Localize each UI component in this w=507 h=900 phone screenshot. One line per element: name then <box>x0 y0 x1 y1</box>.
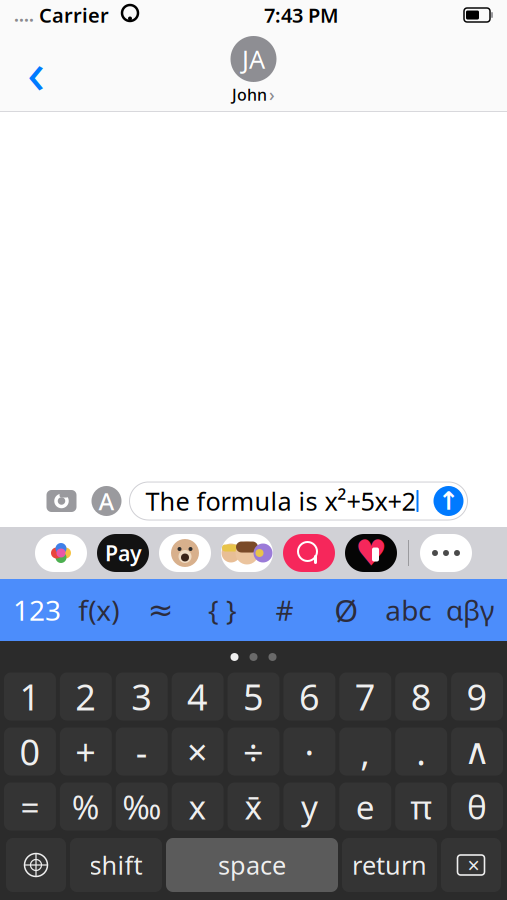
button[interactable]: space <box>166 838 338 892</box>
button[interactable]: Photos <box>30 531 92 575</box>
button[interactable]: Camera <box>39 482 83 520</box>
staticText: 8 <box>411 673 432 720</box>
staticText: JA <box>242 42 265 76</box>
staticText: › <box>269 83 275 106</box>
button[interactable]: Ø <box>315 579 377 641</box>
staticText: y <box>301 784 318 829</box>
button[interactable]: - <box>116 727 168 775</box>
staticText: % <box>72 784 100 829</box>
button[interactable]: Back <box>14 43 58 99</box>
staticText: The formula is x <box>145 484 337 518</box>
button[interactable]: × <box>172 727 224 775</box>
button[interactable]: { } <box>192 579 253 641</box>
button[interactable]: 8 <box>395 672 447 720</box>
staticText: +5x+2 <box>346 484 415 518</box>
staticText: 5 <box>243 673 264 720</box>
staticText: θ <box>467 784 487 829</box>
button[interactable]: 4 <box>172 672 224 720</box>
button[interactable]: Animoji <box>154 531 216 575</box>
staticText: ‹ <box>27 32 45 110</box>
button[interactable]: 9 <box>451 672 503 720</box>
staticText: ÷ <box>243 728 264 775</box>
button[interactable]: x <box>172 782 224 830</box>
staticText: Ø <box>334 590 358 630</box>
staticText: 2 <box>75 673 96 720</box>
button[interactable]: Apple Pay <box>92 531 154 575</box>
staticText: 123 <box>13 591 61 629</box>
staticText <box>109 0 121 30</box>
button[interactable]: shift <box>70 838 162 892</box>
button[interactable]: App Store <box>83 482 129 520</box>
button[interactable]: Delete <box>441 838 501 892</box>
staticText: abc <box>385 591 431 629</box>
button[interactable]: f(x) <box>68 579 130 641</box>
staticText: Pay <box>105 539 142 567</box>
button[interactable]: = <box>4 782 56 830</box>
staticText: space <box>218 848 286 882</box>
staticText: 7:43 PM <box>264 2 339 28</box>
button[interactable]: , <box>339 727 391 775</box>
button[interactable]: ‰ <box>116 782 168 830</box>
staticText: 3 <box>131 673 152 720</box>
button[interactable]: Memoji Stickers <box>216 531 278 575</box>
staticText: ≈ <box>148 593 174 627</box>
button[interactable]: e <box>339 782 391 830</box>
staticText: ↑ <box>438 487 459 515</box>
button[interactable]: 2 <box>60 672 112 720</box>
staticText: x <box>189 784 207 829</box>
staticText: Carrier <box>34 2 109 28</box>
button[interactable]: abc <box>377 579 439 641</box>
button[interactable]: ∧ <box>451 727 503 775</box>
staticText: = <box>20 784 39 829</box>
staticText: π <box>410 784 432 829</box>
button[interactable]: 1 <box>4 672 56 720</box>
staticText: . <box>416 728 426 775</box>
staticText: · <box>304 728 314 775</box>
button[interactable]: + <box>60 727 112 775</box>
staticText: f(x) <box>78 591 119 629</box>
button[interactable]: 6 <box>283 672 335 720</box>
button[interactable]: 3 <box>116 672 168 720</box>
staticText: { } <box>208 591 237 629</box>
staticText: ∧ <box>464 731 490 772</box>
button[interactable]: 0 <box>4 727 56 775</box>
button[interactable]: · <box>283 727 335 775</box>
button[interactable]: % <box>60 782 112 830</box>
button[interactable]: Next keyboard <box>6 838 66 892</box>
button[interactable]: y <box>283 782 335 830</box>
button[interactable]: JA <box>230 36 276 106</box>
staticText: # <box>275 591 293 629</box>
button[interactable]: More <box>415 531 477 575</box>
staticText: ♥ <box>355 533 387 573</box>
button[interactable]: ≈ <box>130 579 192 641</box>
staticText: .... <box>14 3 34 26</box>
button[interactable]: ÷ <box>228 727 279 775</box>
staticText: 0 <box>19 728 40 775</box>
button[interactable]: 5 <box>228 672 279 720</box>
staticText: × <box>187 728 208 775</box>
staticText: ² <box>337 484 346 518</box>
staticText: × <box>467 851 479 879</box>
button[interactable]: 123 <box>6 579 68 641</box>
button[interactable]: # <box>253 579 315 641</box>
staticText: e <box>356 784 375 829</box>
button[interactable]: x̄ <box>228 782 279 830</box>
staticText: John <box>232 84 267 105</box>
staticText: ‰ <box>122 784 161 829</box>
button[interactable]: . <box>395 727 447 775</box>
staticText: 7 <box>355 673 376 720</box>
staticText: αβγ <box>446 591 494 629</box>
button[interactable]: Images <box>278 531 340 575</box>
button[interactable]: αβγ <box>439 579 501 641</box>
staticText: + <box>75 728 96 775</box>
button[interactable]: θ <box>451 782 503 830</box>
staticText: - <box>136 728 148 775</box>
button[interactable]: π <box>395 782 447 830</box>
staticText: x̄ <box>244 784 262 829</box>
button[interactable]: Send <box>433 486 463 516</box>
staticText: shift <box>89 848 142 882</box>
button[interactable]: Digital Touch <box>340 531 402 575</box>
button[interactable]: 7 <box>339 672 391 720</box>
staticText: 4 <box>187 673 208 720</box>
button[interactable]: return <box>342 838 437 892</box>
